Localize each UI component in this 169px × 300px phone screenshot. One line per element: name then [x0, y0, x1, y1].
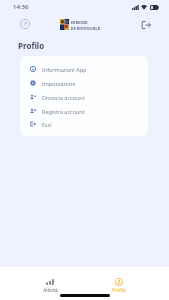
button[interactable]: Dissocia account [20, 90, 148, 104]
staticText: Profilo [18, 40, 45, 51]
button[interactable]: Esci [20, 118, 148, 130]
staticText: ? [24, 20, 27, 28]
button[interactable]: Impostazioni [20, 76, 148, 90]
button[interactable]: Help [17, 16, 33, 32]
button[interactable]: Logout [137, 16, 154, 33]
button[interactable]: Attività [16, 267, 84, 293]
staticText: Profilo [112, 287, 126, 293]
staticText: DE ROTHSCHILD [71, 26, 101, 31]
staticText: EDMOND [71, 20, 88, 25]
button[interactable]: Profilo [84, 267, 153, 293]
staticText: 14:36 [13, 3, 29, 11]
staticText: Esci [42, 121, 52, 128]
button[interactable]: Registra account [20, 104, 148, 118]
staticText: Attività [43, 287, 58, 293]
staticText: Impostazioni [42, 80, 76, 87]
staticText: Dissocia account [42, 94, 85, 101]
button[interactable]: Informazioni App [20, 62, 148, 76]
staticText: Informazioni App [42, 66, 87, 73]
staticText: Registra account [42, 108, 85, 115]
